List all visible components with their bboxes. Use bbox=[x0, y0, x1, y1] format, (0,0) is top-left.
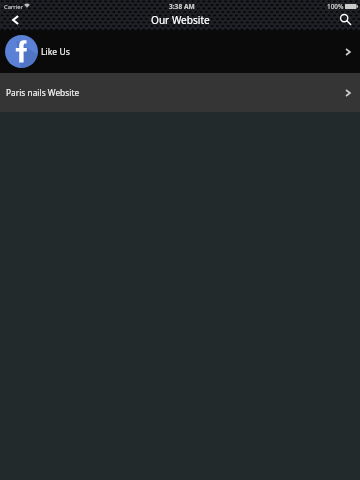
staticText: 100% bbox=[327, 2, 344, 11]
staticText: Paris nails Website bbox=[6, 87, 80, 98]
staticText: Carrier bbox=[4, 3, 23, 11]
button[interactable]: Search bbox=[328, 13, 360, 30]
button[interactable]: Paris nails Website bbox=[0, 73, 360, 112]
staticText: Like Us bbox=[41, 46, 70, 58]
button[interactable]: Like Us bbox=[0, 30, 360, 73]
staticText: 3:38 AM bbox=[169, 2, 195, 11]
button[interactable]: Back bbox=[0, 13, 34, 30]
staticText: Our Website bbox=[151, 13, 210, 27]
